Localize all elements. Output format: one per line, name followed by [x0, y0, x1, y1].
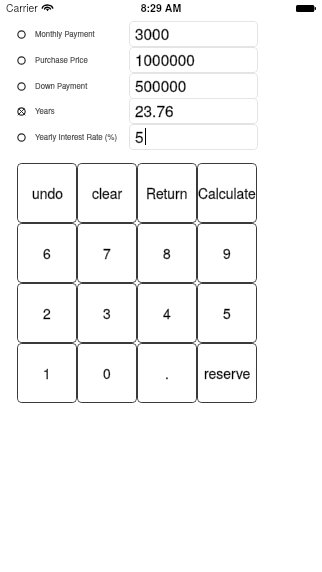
staticText: Years	[35, 105, 55, 116]
button[interactable]: Years	[8, 98, 126, 124]
button[interactable]: .	[137, 343, 197, 403]
button[interactable]: Purchase Price	[8, 47, 126, 73]
staticText: Monthly Payment	[35, 28, 95, 39]
staticText: Yearly Interest Rate (%)	[35, 131, 117, 142]
button[interactable]: 6	[17, 223, 77, 283]
button[interactable]: Yearly Interest Rate (%)	[8, 124, 126, 150]
staticText: 23.76	[135, 99, 174, 121]
staticText: Down Payment	[35, 80, 88, 91]
staticText: Calculate	[198, 183, 256, 203]
staticText: 1	[43, 363, 51, 383]
staticText: 4	[163, 303, 171, 323]
staticText: Calculate	[198, 183, 256, 203]
staticText: reserve	[204, 363, 251, 383]
staticText: 0	[103, 363, 111, 383]
staticText: undo	[32, 183, 63, 203]
staticText: 1000000	[135, 48, 195, 70]
button[interactable]: 3	[77, 283, 137, 343]
button[interactable]: 5	[129, 124, 258, 150]
staticText: Return	[146, 183, 188, 203]
button[interactable]: undo	[17, 163, 77, 223]
staticText: 8:29 AM	[0, 0, 322, 15]
button[interactable]: 23.76	[129, 98, 258, 124]
staticText: 4	[163, 303, 171, 323]
staticText: 3	[103, 303, 111, 323]
staticText: 8	[163, 243, 171, 263]
staticText: Carrier	[6, 0, 38, 15]
staticText: 1000000	[135, 48, 195, 70]
staticText: 500000	[135, 74, 187, 96]
staticText: 6	[43, 243, 51, 263]
staticText: Years	[35, 105, 55, 116]
staticText: 3000	[135, 22, 170, 44]
button[interactable]: 1000000	[129, 47, 258, 73]
button[interactable]: 3000	[129, 21, 258, 47]
staticText: Return	[146, 183, 188, 203]
button[interactable]: 7	[77, 223, 137, 283]
button[interactable]: Return	[137, 163, 197, 223]
button[interactable]: 8	[137, 223, 197, 283]
staticText: 9	[223, 243, 231, 263]
button[interactable]: reserve	[197, 343, 257, 403]
staticText: 5	[135, 125, 144, 147]
button[interactable]: 1	[17, 343, 77, 403]
staticText: reserve	[204, 363, 251, 383]
staticText: 2	[43, 303, 51, 323]
staticText: clear	[92, 183, 123, 203]
staticText: .	[165, 363, 169, 383]
staticText: 7	[103, 243, 111, 263]
staticText: 7	[103, 243, 111, 263]
staticText: 0	[103, 363, 111, 383]
button[interactable]: Calculate	[197, 163, 257, 223]
staticText: 6	[43, 243, 51, 263]
button[interactable]: 5	[197, 283, 257, 343]
staticText: clear	[92, 183, 123, 203]
staticText: 5	[135, 125, 144, 147]
staticText: Purchase Price	[35, 54, 88, 65]
staticText: 3	[103, 303, 111, 323]
staticText: .	[165, 363, 169, 383]
button[interactable]: Down Payment	[8, 73, 126, 99]
staticText: Down Payment	[35, 80, 88, 91]
staticText: 500000	[135, 74, 187, 96]
button[interactable]: Monthly Payment	[8, 21, 126, 47]
staticText: 1	[43, 363, 51, 383]
staticText: undo	[32, 183, 63, 203]
staticText: 23.76	[135, 99, 174, 121]
button[interactable]: 0	[77, 343, 137, 403]
staticText: 8	[163, 243, 171, 263]
button[interactable]: 500000	[129, 73, 258, 99]
staticText: 3000	[135, 22, 170, 44]
button[interactable]: clear	[77, 163, 137, 223]
staticText: Yearly Interest Rate (%)	[35, 131, 117, 142]
button[interactable]: 2	[17, 283, 77, 343]
staticText: 9	[223, 243, 231, 263]
staticText: Monthly Payment	[35, 28, 95, 39]
staticText: 2	[43, 303, 51, 323]
button[interactable]: 4	[137, 283, 197, 343]
staticText: 5	[223, 303, 231, 323]
button[interactable]: 9	[197, 223, 257, 283]
staticText: 5	[223, 303, 231, 323]
staticText: Purchase Price	[35, 54, 88, 65]
